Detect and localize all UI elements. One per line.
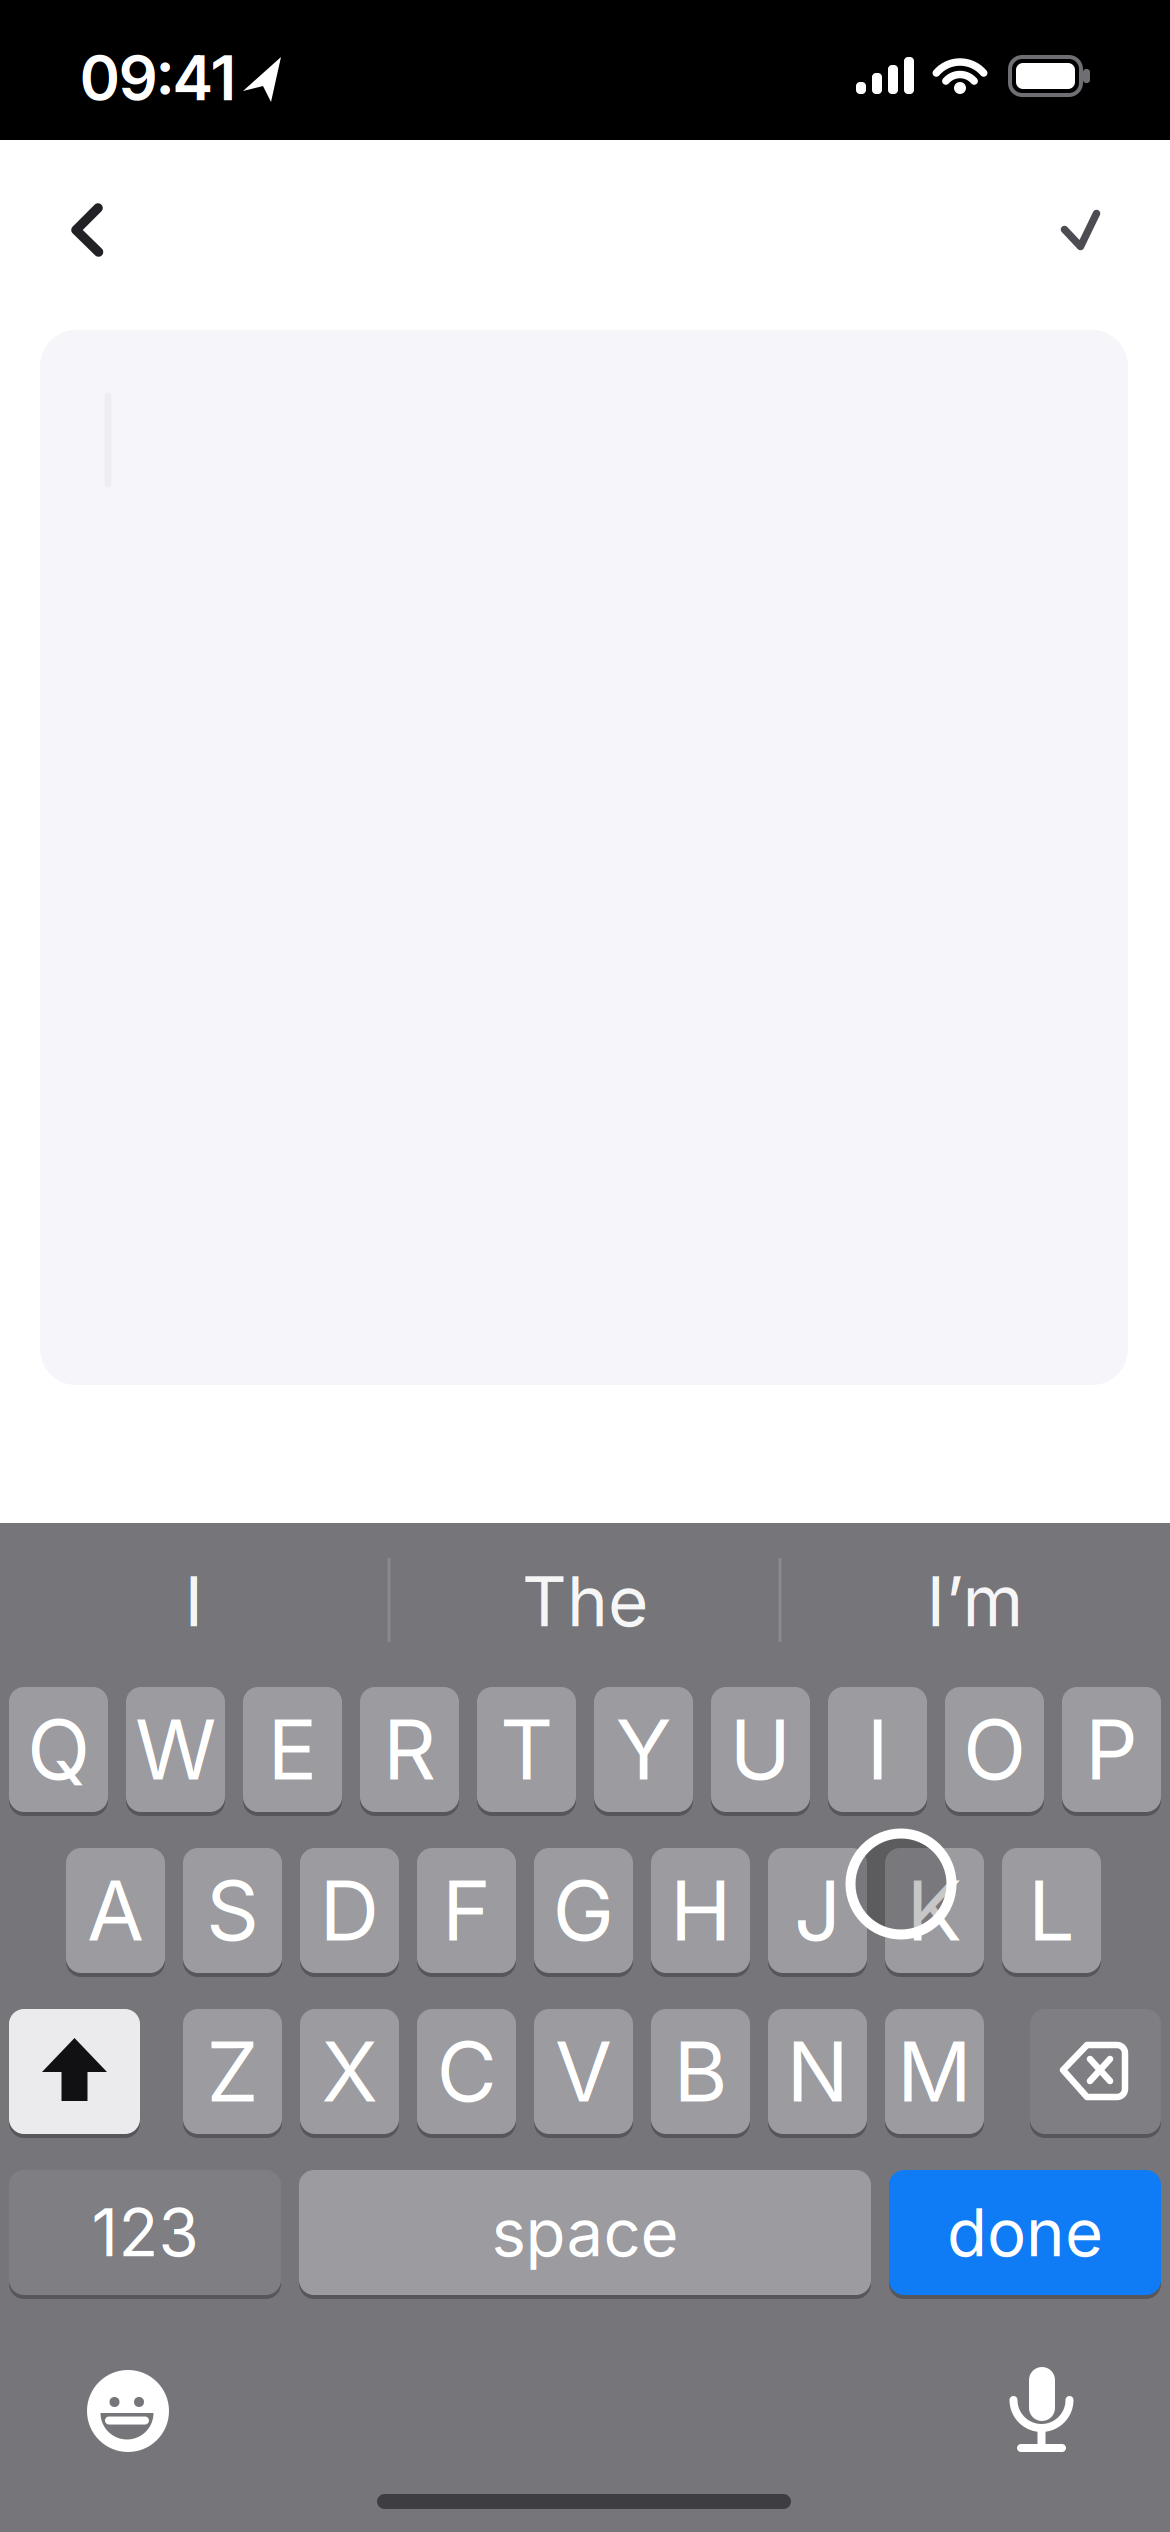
button[interactable]: H [651,1848,750,1973]
button[interactable]: N [768,2009,867,2134]
button[interactable]: L [1002,1848,1101,1973]
button[interactable]: Dictation [986,2352,1096,2462]
staticText: X [321,2021,377,2121]
staticText: space [491,2193,678,2272]
staticText: I [866,1699,888,1799]
button[interactable]: I [828,1687,927,1812]
button[interactable]: K [885,1848,984,1973]
staticText: E [267,1699,317,1799]
staticText: M [897,2021,972,2121]
staticText: R [383,1699,436,1799]
button[interactable]: Q [9,1687,108,1812]
button[interactable]: P [1062,1687,1161,1812]
staticText: 123 [91,2193,198,2272]
button[interactable]: R [360,1687,459,1812]
button[interactable]: space [299,2170,871,2295]
staticText: T [500,1699,553,1799]
staticText: G [552,1860,614,1960]
button[interactable]: Back [33,175,143,285]
button[interactable]: Done [1025,175,1135,285]
staticText: S [206,1860,259,1960]
staticText: P [1085,1699,1138,1799]
button[interactable]: F [417,1848,516,1973]
button[interactable]: J [768,1848,867,1973]
button[interactable]: O [945,1687,1044,1812]
button[interactable]: The [400,1528,770,1673]
staticText: I’m [926,1559,1023,1643]
button[interactable]: E [243,1687,342,1812]
staticText: B [673,2021,727,2121]
button[interactable]: C [417,2009,516,2134]
button[interactable]: A [66,1848,165,1973]
staticText: The [522,1559,648,1643]
button[interactable]: Delete [1030,2009,1161,2134]
staticText: done [947,2193,1103,2272]
staticText: L [1028,1860,1075,1960]
staticText: H [670,1860,731,1960]
staticText: J [794,1860,841,1960]
button[interactable]: 123 [9,2170,281,2295]
button[interactable]: T [477,1687,576,1812]
button[interactable]: S [183,1848,282,1973]
button[interactable]: M [885,2009,984,2134]
button[interactable]: Emoji [73,2356,183,2466]
staticText: Z [206,2021,258,2121]
staticText: F [442,1860,491,1960]
staticText: U [729,1699,791,1799]
button[interactable]: B [651,2009,750,2134]
button[interactable]: Shift [9,2009,140,2134]
button[interactable]: G [534,1848,633,1973]
button[interactable]: done [889,2170,1161,2295]
staticText: 09:41 [80,41,235,115]
staticText: C [436,2021,496,2121]
button[interactable]: Z [183,2009,282,2134]
button[interactable]: I’m [790,1528,1160,1673]
button[interactable]: D [300,1848,399,1973]
button[interactable]: Y [594,1687,693,1812]
staticText: A [87,1860,144,1960]
staticText: K [906,1860,962,1960]
staticText: Y [615,1699,671,1799]
button[interactable]: W [126,1687,225,1812]
button[interactable]: X [300,2009,399,2134]
button[interactable]: I [9,1528,379,1673]
button[interactable]: V [534,2009,633,2134]
staticText: Q [27,1699,90,1799]
staticText: W [135,1699,216,1799]
button[interactable]: U [711,1687,810,1812]
staticText: N [786,2021,848,2121]
staticText: O [963,1699,1026,1799]
staticText: I [184,1559,203,1643]
staticText: V [555,2021,612,2121]
staticText: D [319,1860,379,1960]
